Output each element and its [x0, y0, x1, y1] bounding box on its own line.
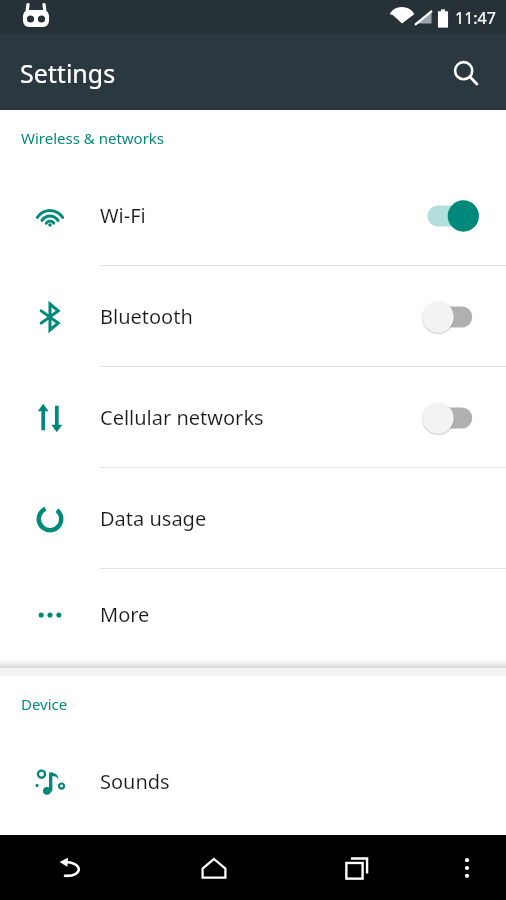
button[interactable]: Bluetooth — [0, 266, 506, 367]
button[interactable]: Home — [142, 835, 285, 900]
button[interactable]: More — [0, 569, 506, 660]
staticText: Sounds — [100, 768, 482, 795]
staticText: 11:47 — [455, 7, 496, 29]
button[interactable]: Wi-Fi switch — [420, 194, 482, 238]
button[interactable]: Sounds — [0, 731, 506, 832]
button[interactable]: Search — [440, 47, 492, 99]
staticText: Device — [21, 694, 68, 714]
staticText: Settings — [20, 56, 116, 90]
staticText: Wireless & networks — [21, 128, 165, 148]
staticText: Wi-Fi — [100, 202, 420, 229]
button[interactable]: Bluetooth switch — [420, 295, 482, 339]
button[interactable]: More options — [428, 835, 506, 900]
button[interactable]: Recent apps — [285, 835, 428, 900]
staticText: Data usage — [100, 505, 482, 532]
button[interactable]: Back — [0, 835, 142, 900]
staticText: Bluetooth — [100, 303, 420, 330]
button[interactable]: Cellular networks — [0, 367, 506, 468]
staticText: More — [100, 601, 482, 628]
staticText: Cellular networks — [100, 404, 420, 431]
button[interactable]: Cellular networks switch — [420, 396, 482, 440]
button[interactable]: Data usage — [0, 468, 506, 569]
button[interactable]: Wi-Fi — [0, 165, 506, 266]
